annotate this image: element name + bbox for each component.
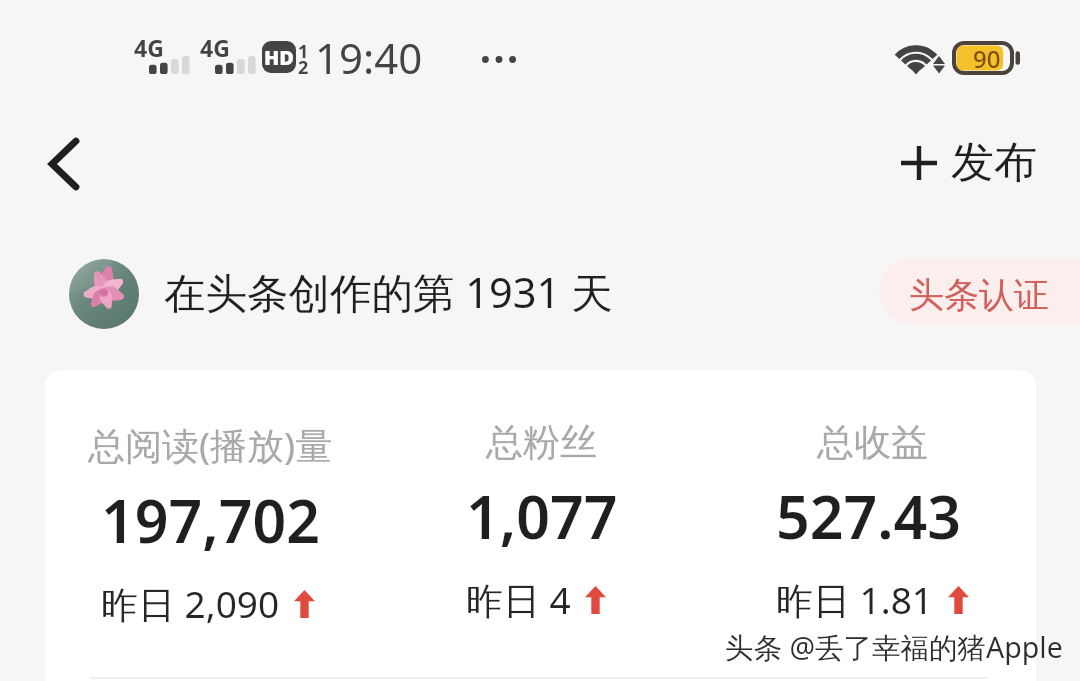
staticText: 头条认证: [909, 273, 1049, 317]
staticText: 197,702: [101, 480, 320, 560]
staticText: 4G: [134, 32, 164, 63]
staticText: 1,077: [466, 476, 618, 556]
staticText: 527.43: [776, 476, 962, 556]
staticText: 发布: [951, 136, 1037, 190]
staticText: 头条 @丢了幸福的猪Apple: [724, 628, 1062, 667]
staticText: 在头条创作的第 1931 天: [164, 264, 613, 321]
staticText: 头条 @丢了幸福的猪Apple: [725, 628, 1063, 667]
staticText: 昨日 2,090: [101, 578, 280, 629]
staticText: 总粉丝: [486, 419, 597, 466]
staticText: 90: [973, 42, 1001, 75]
button[interactable]: Back: [29, 129, 99, 199]
staticText: 2: [298, 55, 309, 80]
button[interactable]: 在头条创作的第 1931 天: [69, 259, 613, 329]
button[interactable]: 发布: [888, 124, 1049, 202]
button[interactable]: 总阅读(播放)量: [45, 370, 376, 629]
staticText: 昨日 4: [466, 574, 571, 625]
staticText: 1: [298, 39, 309, 64]
button[interactable]: 总收益: [707, 370, 1036, 625]
staticText: 头条 @丢了幸福的猪Apple: [725, 627, 1063, 666]
staticText: 头条 @丢了幸福的猪Apple: [726, 628, 1064, 667]
staticText: 头条 @丢了幸福的猪Apple: [725, 629, 1063, 668]
staticText: HD: [264, 44, 294, 71]
staticText: 4G: [200, 32, 230, 63]
staticText: 总阅读(播放)量: [88, 419, 333, 470]
staticText: 总收益: [817, 419, 928, 466]
button[interactable]: 总粉丝: [376, 370, 707, 625]
staticText: 19:40: [315, 29, 423, 86]
staticText: 昨日 1.81: [776, 574, 934, 625]
button[interactable]: 头条认证: [879, 258, 1080, 324]
